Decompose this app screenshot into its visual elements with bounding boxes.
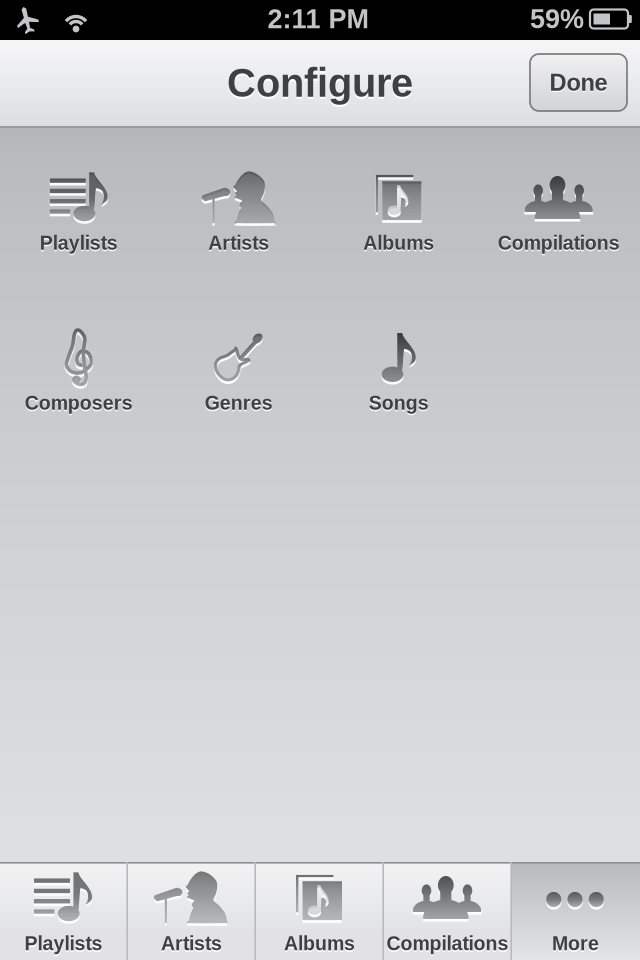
staticText: Compilations xyxy=(498,234,620,255)
staticText: Albums xyxy=(363,234,434,255)
button[interactable]: Compilations xyxy=(384,862,512,960)
staticText: Composers xyxy=(25,394,133,415)
staticText: Compilations xyxy=(498,232,620,254)
staticText: Configure xyxy=(227,63,413,107)
button[interactable]: Artists xyxy=(128,862,256,960)
staticText: Artists xyxy=(208,232,269,254)
staticText: Compilations xyxy=(386,933,508,954)
button[interactable]: Playlists xyxy=(0,862,128,960)
staticText: Done xyxy=(549,69,607,96)
staticText: Genres xyxy=(205,392,273,414)
staticText: Artists xyxy=(208,234,269,255)
staticText: Done xyxy=(549,71,607,97)
staticText: Playlists xyxy=(40,232,118,254)
staticText: Composers xyxy=(25,392,133,414)
staticText: More xyxy=(552,934,599,956)
button[interactable]: Artists xyxy=(160,145,320,275)
staticText: More xyxy=(552,933,599,954)
staticText: Compilations xyxy=(386,934,508,956)
staticText: Configure xyxy=(227,61,413,105)
staticText: Albums xyxy=(284,933,355,954)
staticText: Albums xyxy=(284,934,355,956)
staticText: Artists xyxy=(161,934,222,956)
button[interactable]: Genres xyxy=(160,305,320,435)
staticText: Albums xyxy=(363,232,434,254)
button[interactable]: Done xyxy=(530,54,627,111)
staticText: Playlists xyxy=(24,934,102,956)
button[interactable]: Compilations xyxy=(480,145,640,275)
staticText: Genres xyxy=(205,394,273,415)
button[interactable]: Albums xyxy=(256,862,384,960)
staticText: Playlists xyxy=(40,234,118,255)
button[interactable]: Albums xyxy=(320,145,480,275)
staticText: Songs xyxy=(369,392,429,414)
button[interactable]: Composers xyxy=(0,305,160,435)
staticText: Songs xyxy=(369,394,429,415)
button[interactable]: Playlists xyxy=(0,145,160,275)
staticText: 59% xyxy=(530,4,584,34)
staticText: Playlists xyxy=(24,933,102,954)
button[interactable]: More xyxy=(512,862,640,960)
staticText: 2:11 PM xyxy=(267,4,368,34)
button[interactable]: Songs xyxy=(320,305,480,435)
staticText: Artists xyxy=(161,933,222,954)
